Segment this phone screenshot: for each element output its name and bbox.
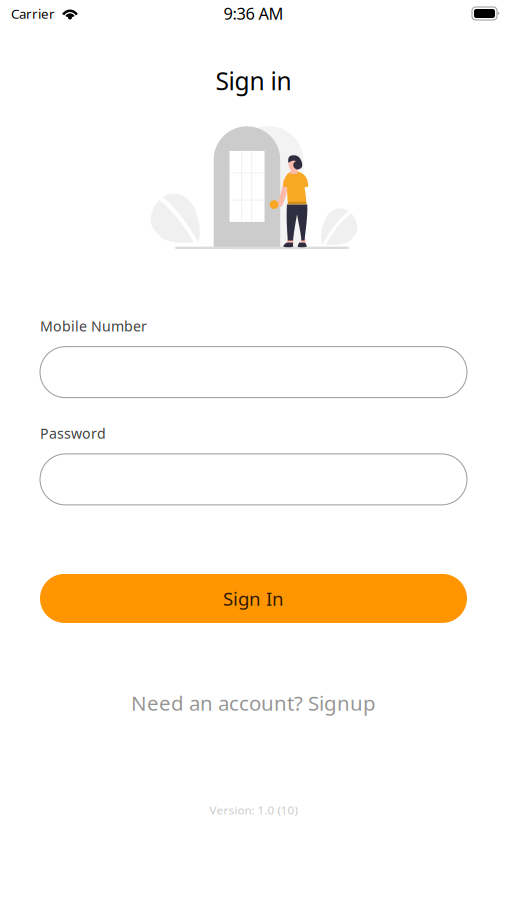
button[interactable]: Sign In	[40, 574, 467, 623]
staticText: Carrier	[11, 4, 55, 23]
staticText: Mobile Number	[40, 316, 147, 336]
staticText: Version: 1.0 (10)	[209, 802, 297, 818]
staticText: Password	[40, 424, 106, 443]
staticText: Sign in	[215, 64, 291, 97]
staticText: Sign In	[223, 586, 284, 611]
staticText: 9:36 AM	[223, 2, 283, 25]
button[interactable]	[40, 347, 467, 398]
staticText: Need an account? Signup	[131, 689, 376, 717]
button[interactable]: Need an account? Signup	[40, 683, 467, 723]
button[interactable]	[40, 454, 467, 505]
